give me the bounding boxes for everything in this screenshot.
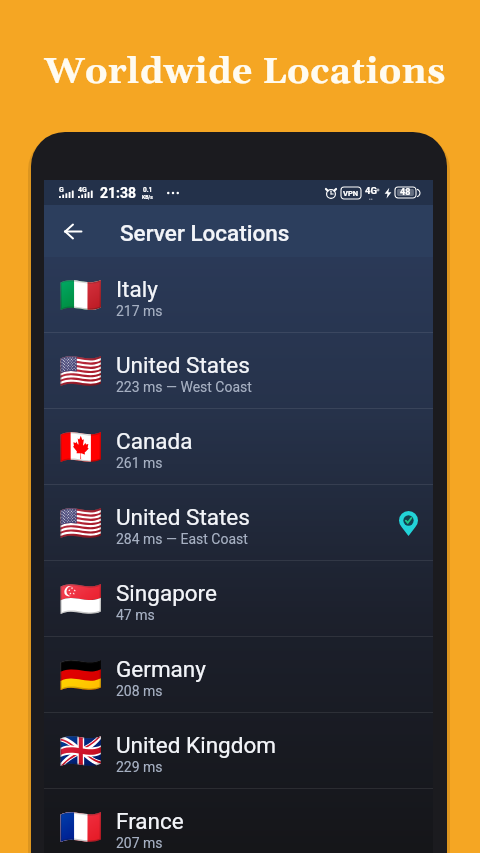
other: Selected server xyxy=(399,511,418,536)
staticText: Server Locations xyxy=(120,220,290,246)
staticText: 🇺🇸 xyxy=(59,351,103,392)
button[interactable]: 🇺🇸 xyxy=(44,333,433,408)
staticText: G xyxy=(59,186,64,194)
staticText: 217 ms xyxy=(116,303,163,319)
staticText: 223 ms — West Coast xyxy=(116,379,252,395)
staticText: 🇮🇹 xyxy=(59,275,103,316)
staticText: 261 ms xyxy=(116,455,163,471)
button[interactable]: Back xyxy=(53,211,93,251)
staticText: 4G xyxy=(78,186,87,194)
staticText: United States xyxy=(116,504,250,530)
staticText: 47 ms xyxy=(116,607,155,623)
staticText: United Kingdom xyxy=(116,732,276,758)
button[interactable]: 🇸🇬 xyxy=(44,561,433,636)
staticText: Worldwide Locations xyxy=(5,50,480,95)
staticText: 🇺🇸 xyxy=(59,503,103,544)
button[interactable]: 🇬🇧 xyxy=(44,713,433,788)
button[interactable]: 🇨🇦 xyxy=(44,409,433,484)
staticText: 48 xyxy=(400,187,411,198)
staticText: 208 ms xyxy=(116,683,163,699)
staticText: 229 ms xyxy=(116,759,163,775)
staticText: KB/s xyxy=(142,194,153,200)
staticText: 284 ms — East Coast xyxy=(116,531,248,547)
staticText: 🇩🇪 xyxy=(59,655,103,696)
staticText: 🇬🇧 xyxy=(59,731,103,772)
button[interactable]: 🇫🇷 xyxy=(44,789,433,853)
staticText: United States xyxy=(116,352,250,378)
button[interactable]: 🇩🇪 xyxy=(44,637,433,712)
staticText: 0.1 xyxy=(143,186,153,194)
button[interactable]: 🇺🇸 xyxy=(44,485,433,560)
staticText: Italy xyxy=(116,276,158,302)
staticText: Germany xyxy=(116,656,206,682)
staticText: 4G xyxy=(365,185,377,196)
other: Alarm xyxy=(325,186,337,199)
staticText: France xyxy=(116,808,184,834)
button[interactable]: 🇮🇹 xyxy=(44,257,433,332)
staticText: Singapore xyxy=(116,580,217,606)
staticText: 207 ms xyxy=(116,835,163,851)
staticText: 🇫🇷 xyxy=(59,807,103,848)
staticText: Canada xyxy=(116,428,193,454)
staticText: 🇨🇦 xyxy=(59,427,103,468)
staticText: 21:38 xyxy=(100,185,137,201)
staticText: VPN xyxy=(343,189,359,198)
staticText: 🇸🇬 xyxy=(59,579,103,620)
